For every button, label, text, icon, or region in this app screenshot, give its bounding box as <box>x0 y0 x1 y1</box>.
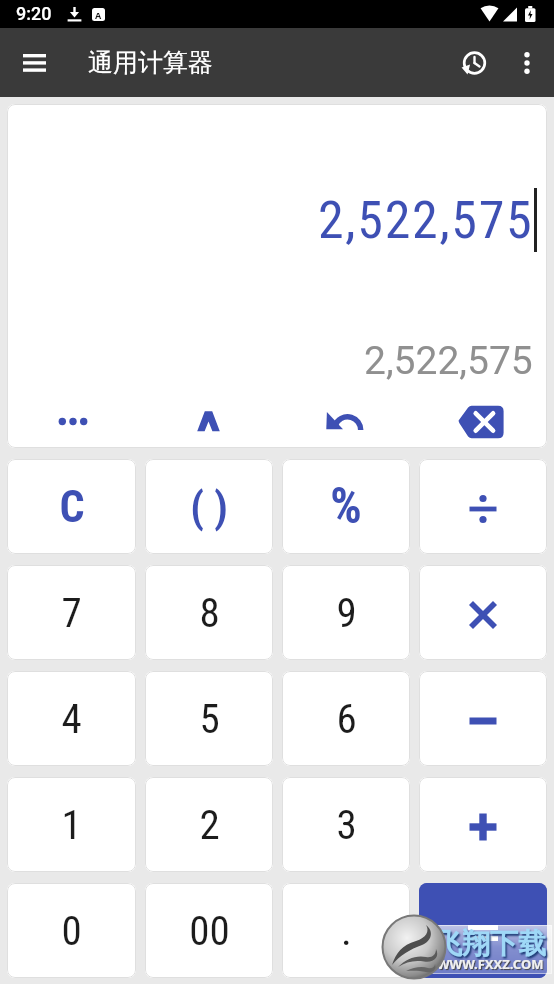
button[interactable]: 5 <box>145 671 273 766</box>
button[interactable] <box>507 39 547 86</box>
staticText: 0 <box>61 907 82 955</box>
button[interactable]: 00 <box>145 883 273 978</box>
staticText: C <box>59 481 85 533</box>
button[interactable]: 3 <box>282 777 410 872</box>
button[interactable] <box>321 398 369 446</box>
staticText: 9 <box>336 589 357 637</box>
staticText: 6 <box>336 695 357 743</box>
button[interactable] <box>419 459 547 554</box>
button[interactable] <box>419 883 547 978</box>
staticText: . <box>341 907 352 955</box>
staticText: 7 <box>61 589 82 637</box>
button[interactable]: ( ) <box>145 459 273 554</box>
staticText: 2,522,575 <box>364 338 533 384</box>
staticText: 2,522,575 <box>318 190 534 251</box>
button[interactable] <box>419 565 547 660</box>
button[interactable] <box>458 398 506 446</box>
button[interactable]: 0 <box>7 883 136 978</box>
button[interactable] <box>419 777 547 872</box>
staticText: WWW.FXXZ.COM <box>437 955 544 973</box>
button[interactable]: 4 <box>7 671 136 766</box>
button[interactable]: 8 <box>145 565 273 660</box>
button[interactable] <box>450 39 498 87</box>
button[interactable]: 7 <box>7 565 136 660</box>
button[interactable]: . <box>282 883 410 978</box>
staticText: 2 <box>199 801 220 849</box>
staticText: 8 <box>199 589 220 637</box>
staticText: 4 <box>61 695 82 743</box>
staticText: 00 <box>189 907 230 955</box>
button[interactable] <box>184 398 232 446</box>
staticText: 5 <box>199 695 220 743</box>
staticText: 飞翔下载 <box>434 926 546 961</box>
button[interactable]: 9 <box>282 565 410 660</box>
staticText: % <box>330 477 362 536</box>
button[interactable] <box>419 671 547 766</box>
staticText: A <box>95 9 102 21</box>
button[interactable]: C <box>7 459 136 554</box>
button[interactable]: 6 <box>282 671 410 766</box>
button[interactable]: 2 <box>145 777 273 872</box>
staticText: 9:20 <box>16 3 52 24</box>
staticText: 通用计算器 <box>88 47 213 78</box>
button[interactable]: 1 <box>7 777 136 872</box>
button[interactable] <box>47 398 95 446</box>
staticText: 3 <box>336 801 357 849</box>
staticText: 1 <box>61 801 82 849</box>
button[interactable] <box>11 39 58 86</box>
staticText: ( ) <box>190 482 228 532</box>
button[interactable]: % <box>282 459 410 554</box>
